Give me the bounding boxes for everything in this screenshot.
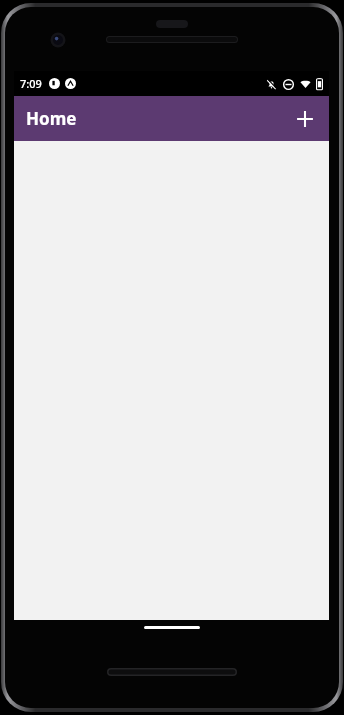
- staticText: Home: [26, 107, 77, 130]
- button[interactable]: Add: [285, 99, 325, 139]
- staticText: 7:09: [20, 76, 42, 91]
